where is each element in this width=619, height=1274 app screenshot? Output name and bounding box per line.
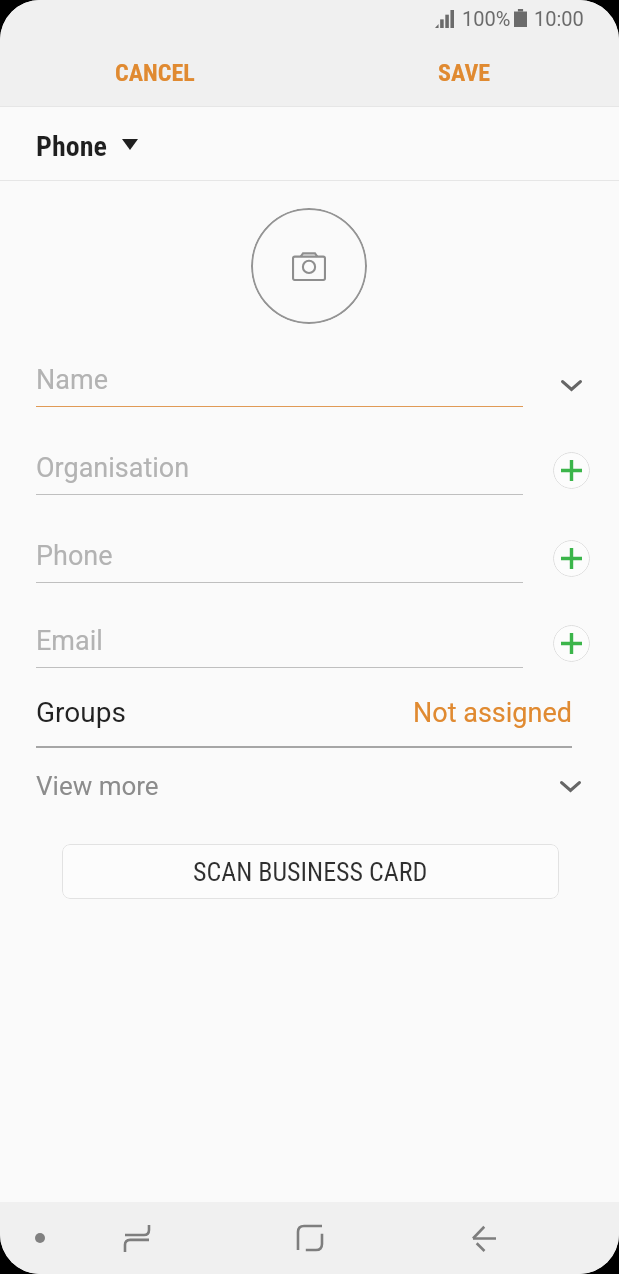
- button[interactable]: Expand name field: [545, 359, 597, 411]
- button[interactable]: Groups: [0, 684, 619, 741]
- button[interactable]: View more: [0, 756, 619, 816]
- staticText: SAVE: [438, 59, 491, 87]
- staticText: Phone: [36, 130, 107, 163]
- button[interactable]: Phone: [36, 526, 523, 582]
- button[interactable]: Add Email: [545, 617, 597, 669]
- button[interactable]: Home: [281, 1209, 339, 1267]
- staticText: Name: [36, 364, 108, 396]
- staticText: SCAN BUSINESS CARD: [193, 857, 428, 887]
- staticText: 100%: [462, 7, 511, 30]
- button[interactable]: Recent apps: [108, 1209, 166, 1267]
- button[interactable]: Email: [36, 611, 523, 667]
- button[interactable]: Add Phone: [545, 532, 597, 584]
- button[interactable]: SCAN BUSINESS CARD: [62, 844, 559, 899]
- button[interactable]: Back: [455, 1209, 513, 1267]
- staticText: Not assigned: [413, 697, 572, 729]
- button[interactable]: CANCEL: [0, 40, 309, 106]
- staticText: View more: [36, 771, 159, 801]
- button[interactable]: Add photo: [251, 208, 367, 324]
- button[interactable]: Name: [36, 350, 523, 406]
- staticText: Organisation: [36, 452, 190, 484]
- button[interactable]: Add Organisation: [545, 444, 597, 496]
- staticText: Groups: [36, 696, 126, 729]
- staticText: Email: [36, 625, 103, 657]
- button[interactable]: Phone: [0, 110, 619, 183]
- staticText: CANCEL: [115, 59, 195, 87]
- button[interactable]: Organisation: [36, 438, 523, 494]
- button[interactable]: More options: [11, 1209, 69, 1267]
- button[interactable]: SAVE: [309, 40, 619, 106]
- staticText: 10:00: [534, 7, 584, 30]
- staticText: Phone: [36, 540, 113, 572]
